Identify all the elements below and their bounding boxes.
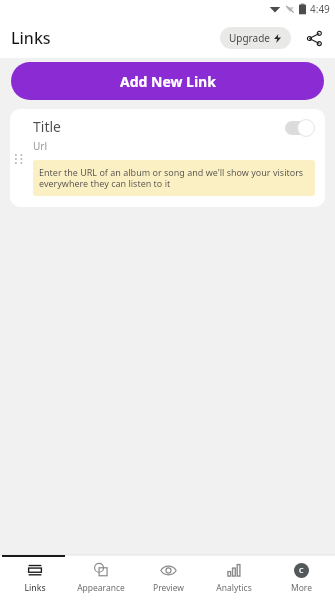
button[interactable]: Title <box>10 109 325 207</box>
button[interactable]: Appearance <box>69 555 133 600</box>
staticText: Enter the URL of an album or song and we… <box>39 166 309 190</box>
button[interactable]: Analytics <box>202 555 266 600</box>
staticText: Appearance <box>77 582 125 594</box>
button[interactable]: Links <box>3 555 67 600</box>
button[interactable]: Reorder link <box>13 153 25 165</box>
staticText: Add New Link <box>120 72 216 91</box>
staticText: C <box>299 566 304 576</box>
staticText: Upgrade <box>229 31 270 45</box>
button[interactable]: Share <box>301 25 327 51</box>
staticText: Links <box>11 27 51 49</box>
button[interactable]: Upgrade <box>220 27 291 49</box>
button[interactable]: Preview <box>136 555 200 600</box>
button[interactable]: C <box>269 555 333 600</box>
staticText: Links <box>24 582 46 594</box>
staticText: More <box>291 582 312 594</box>
staticText: Url <box>33 139 48 153</box>
staticText: 4:49 <box>310 2 330 16</box>
button[interactable]: Toggle link visibility <box>285 118 315 138</box>
button[interactable]: Add New Link <box>11 62 324 100</box>
staticText: Title <box>33 117 61 136</box>
staticText: Analytics <box>216 582 252 594</box>
staticText: Preview <box>153 582 184 594</box>
